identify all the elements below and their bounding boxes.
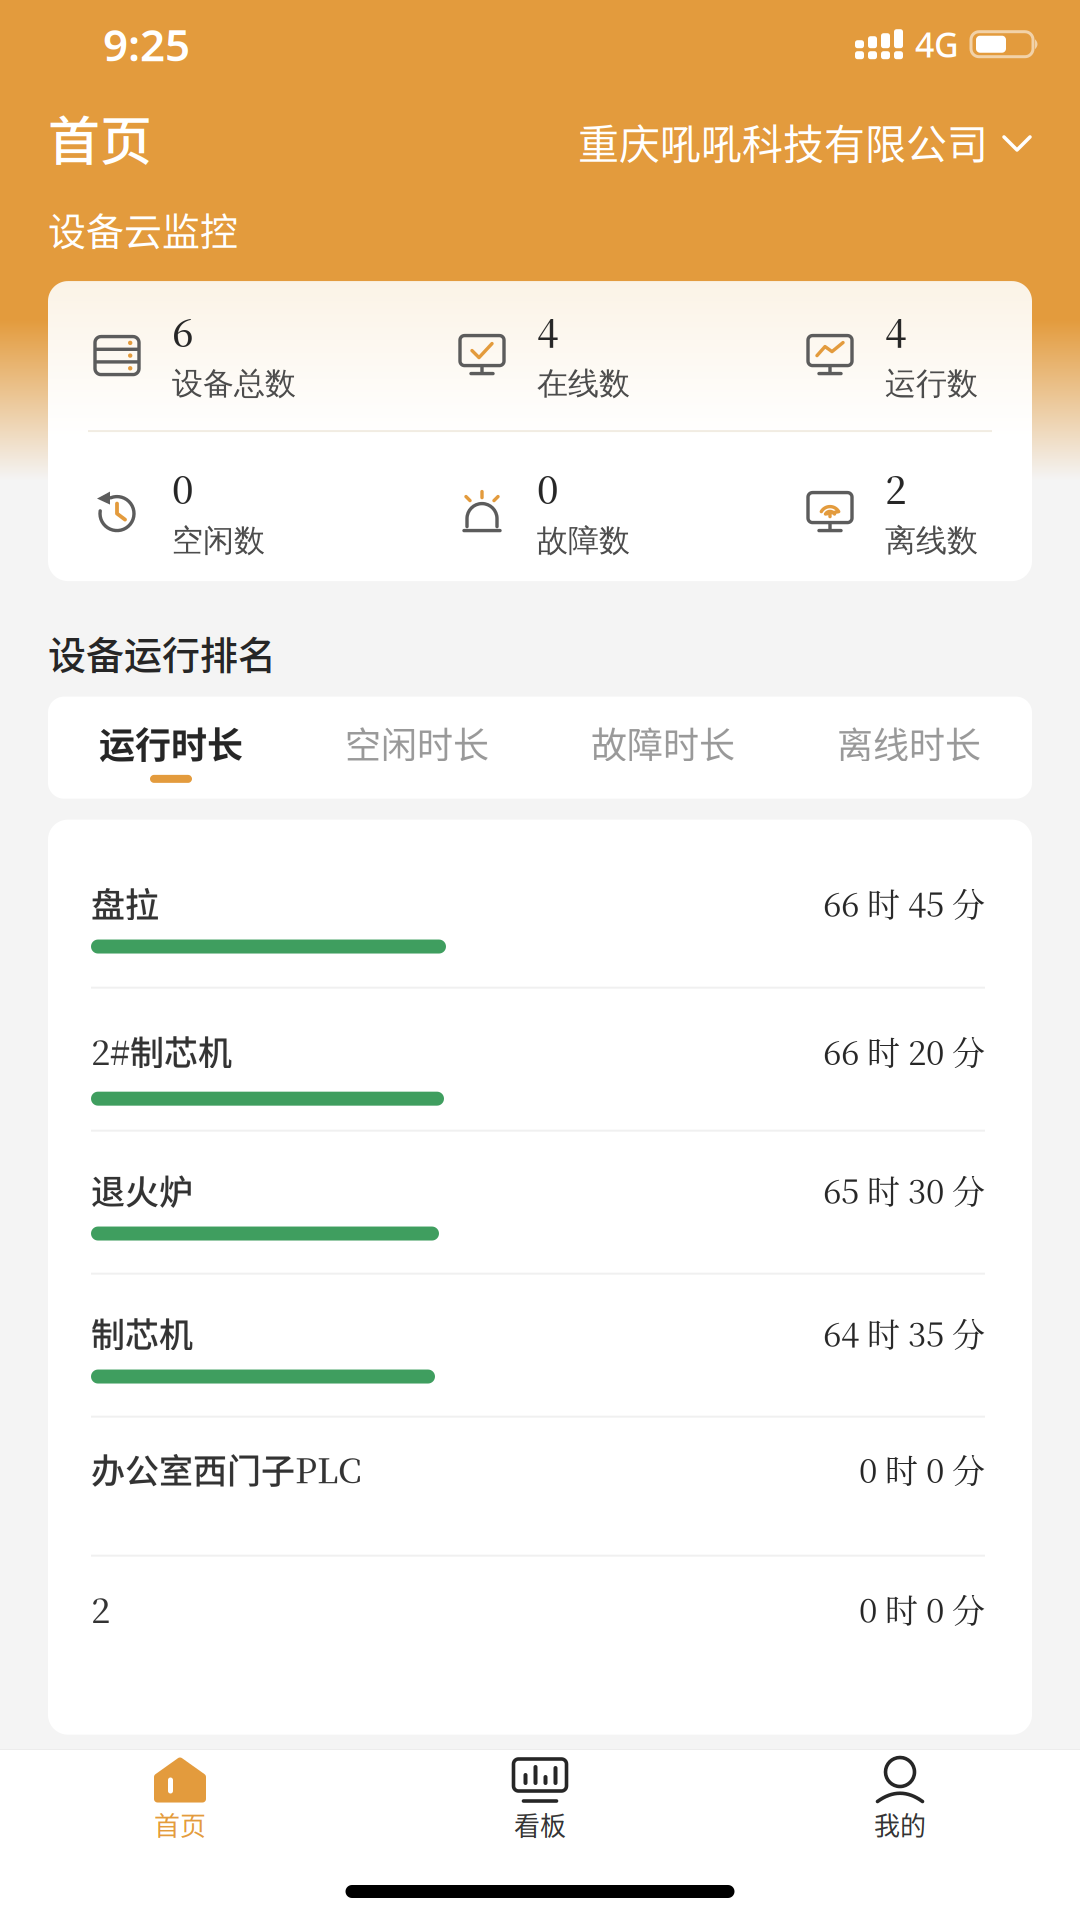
staticText: 退火炉 bbox=[91, 1170, 193, 1210]
staticText: 64 时 35 分 bbox=[823, 1313, 985, 1352]
staticText: 65 时 30 分 bbox=[823, 1170, 985, 1209]
staticText: 设备总数 bbox=[172, 365, 296, 403]
staticText: 在线数 bbox=[537, 365, 630, 403]
staticText: 4G bbox=[915, 22, 959, 67]
staticText: 6 bbox=[172, 308, 194, 353]
staticText: 4 bbox=[537, 308, 559, 353]
staticText: 0 时 0 分 bbox=[859, 1589, 985, 1628]
staticText: 空闲时长 bbox=[345, 722, 489, 764]
button[interactable]: 退火炉 bbox=[91, 1132, 985, 1273]
staticText: 我的 bbox=[874, 1809, 926, 1839]
staticText: 运行时长 bbox=[99, 722, 243, 764]
staticText: 看板 bbox=[514, 1809, 566, 1839]
button[interactable]: 看板 bbox=[360, 1757, 720, 1839]
button[interactable]: 离线时长 bbox=[786, 697, 1032, 799]
button[interactable]: 空闲时长 bbox=[294, 697, 540, 799]
staticText: 故障时长 bbox=[591, 722, 735, 764]
staticText: 运行数 bbox=[885, 365, 978, 403]
staticText: 0 时 0 分 bbox=[859, 1449, 985, 1488]
staticText: 空闲数 bbox=[172, 522, 265, 560]
button[interactable]: 2#制芯机 bbox=[91, 989, 985, 1130]
staticText: 0 bbox=[172, 465, 194, 510]
button[interactable]: 重庆吼吼科技有限公司 bbox=[578, 105, 1030, 169]
staticText: 离线时长 bbox=[837, 722, 981, 764]
button[interactable]: 我的 bbox=[720, 1757, 1080, 1839]
staticText: 离线数 bbox=[885, 522, 978, 560]
staticText: 制芯机 bbox=[91, 1313, 193, 1353]
button[interactable]: 运行时长 bbox=[48, 697, 294, 799]
staticText: 办公室西门子PLC bbox=[91, 1445, 362, 1493]
staticText: 首页 bbox=[48, 107, 152, 168]
button[interactable]: 盘拉 bbox=[91, 845, 985, 987]
staticText: 4 bbox=[885, 308, 907, 353]
staticText: 2 bbox=[91, 1589, 110, 1628]
button[interactable]: 制芯机 bbox=[91, 1275, 985, 1416]
staticText: 重庆吼吼科技有限公司 bbox=[578, 117, 988, 165]
staticText: 故障数 bbox=[537, 522, 630, 560]
staticText: 盘拉 bbox=[91, 883, 159, 923]
staticText: 首页 bbox=[154, 1809, 206, 1839]
button[interactable]: 故障时长 bbox=[540, 697, 786, 799]
staticText: 2#制芯机 bbox=[91, 1027, 232, 1075]
button[interactable]: 首页 bbox=[0, 1757, 360, 1839]
staticText: 设备运行排名 bbox=[48, 630, 276, 675]
staticText: 2 bbox=[885, 465, 907, 510]
staticText: 0 bbox=[537, 465, 559, 510]
staticText: 设备云监控 bbox=[48, 206, 238, 251]
button[interactable]: 办公室西门子PLC bbox=[91, 1418, 985, 1555]
staticText: 66 时 45 分 bbox=[823, 883, 985, 922]
button[interactable]: 2 bbox=[91, 1557, 985, 1694]
staticText: 9:25 bbox=[103, 15, 190, 73]
staticText: 66 时 20 分 bbox=[823, 1031, 985, 1070]
